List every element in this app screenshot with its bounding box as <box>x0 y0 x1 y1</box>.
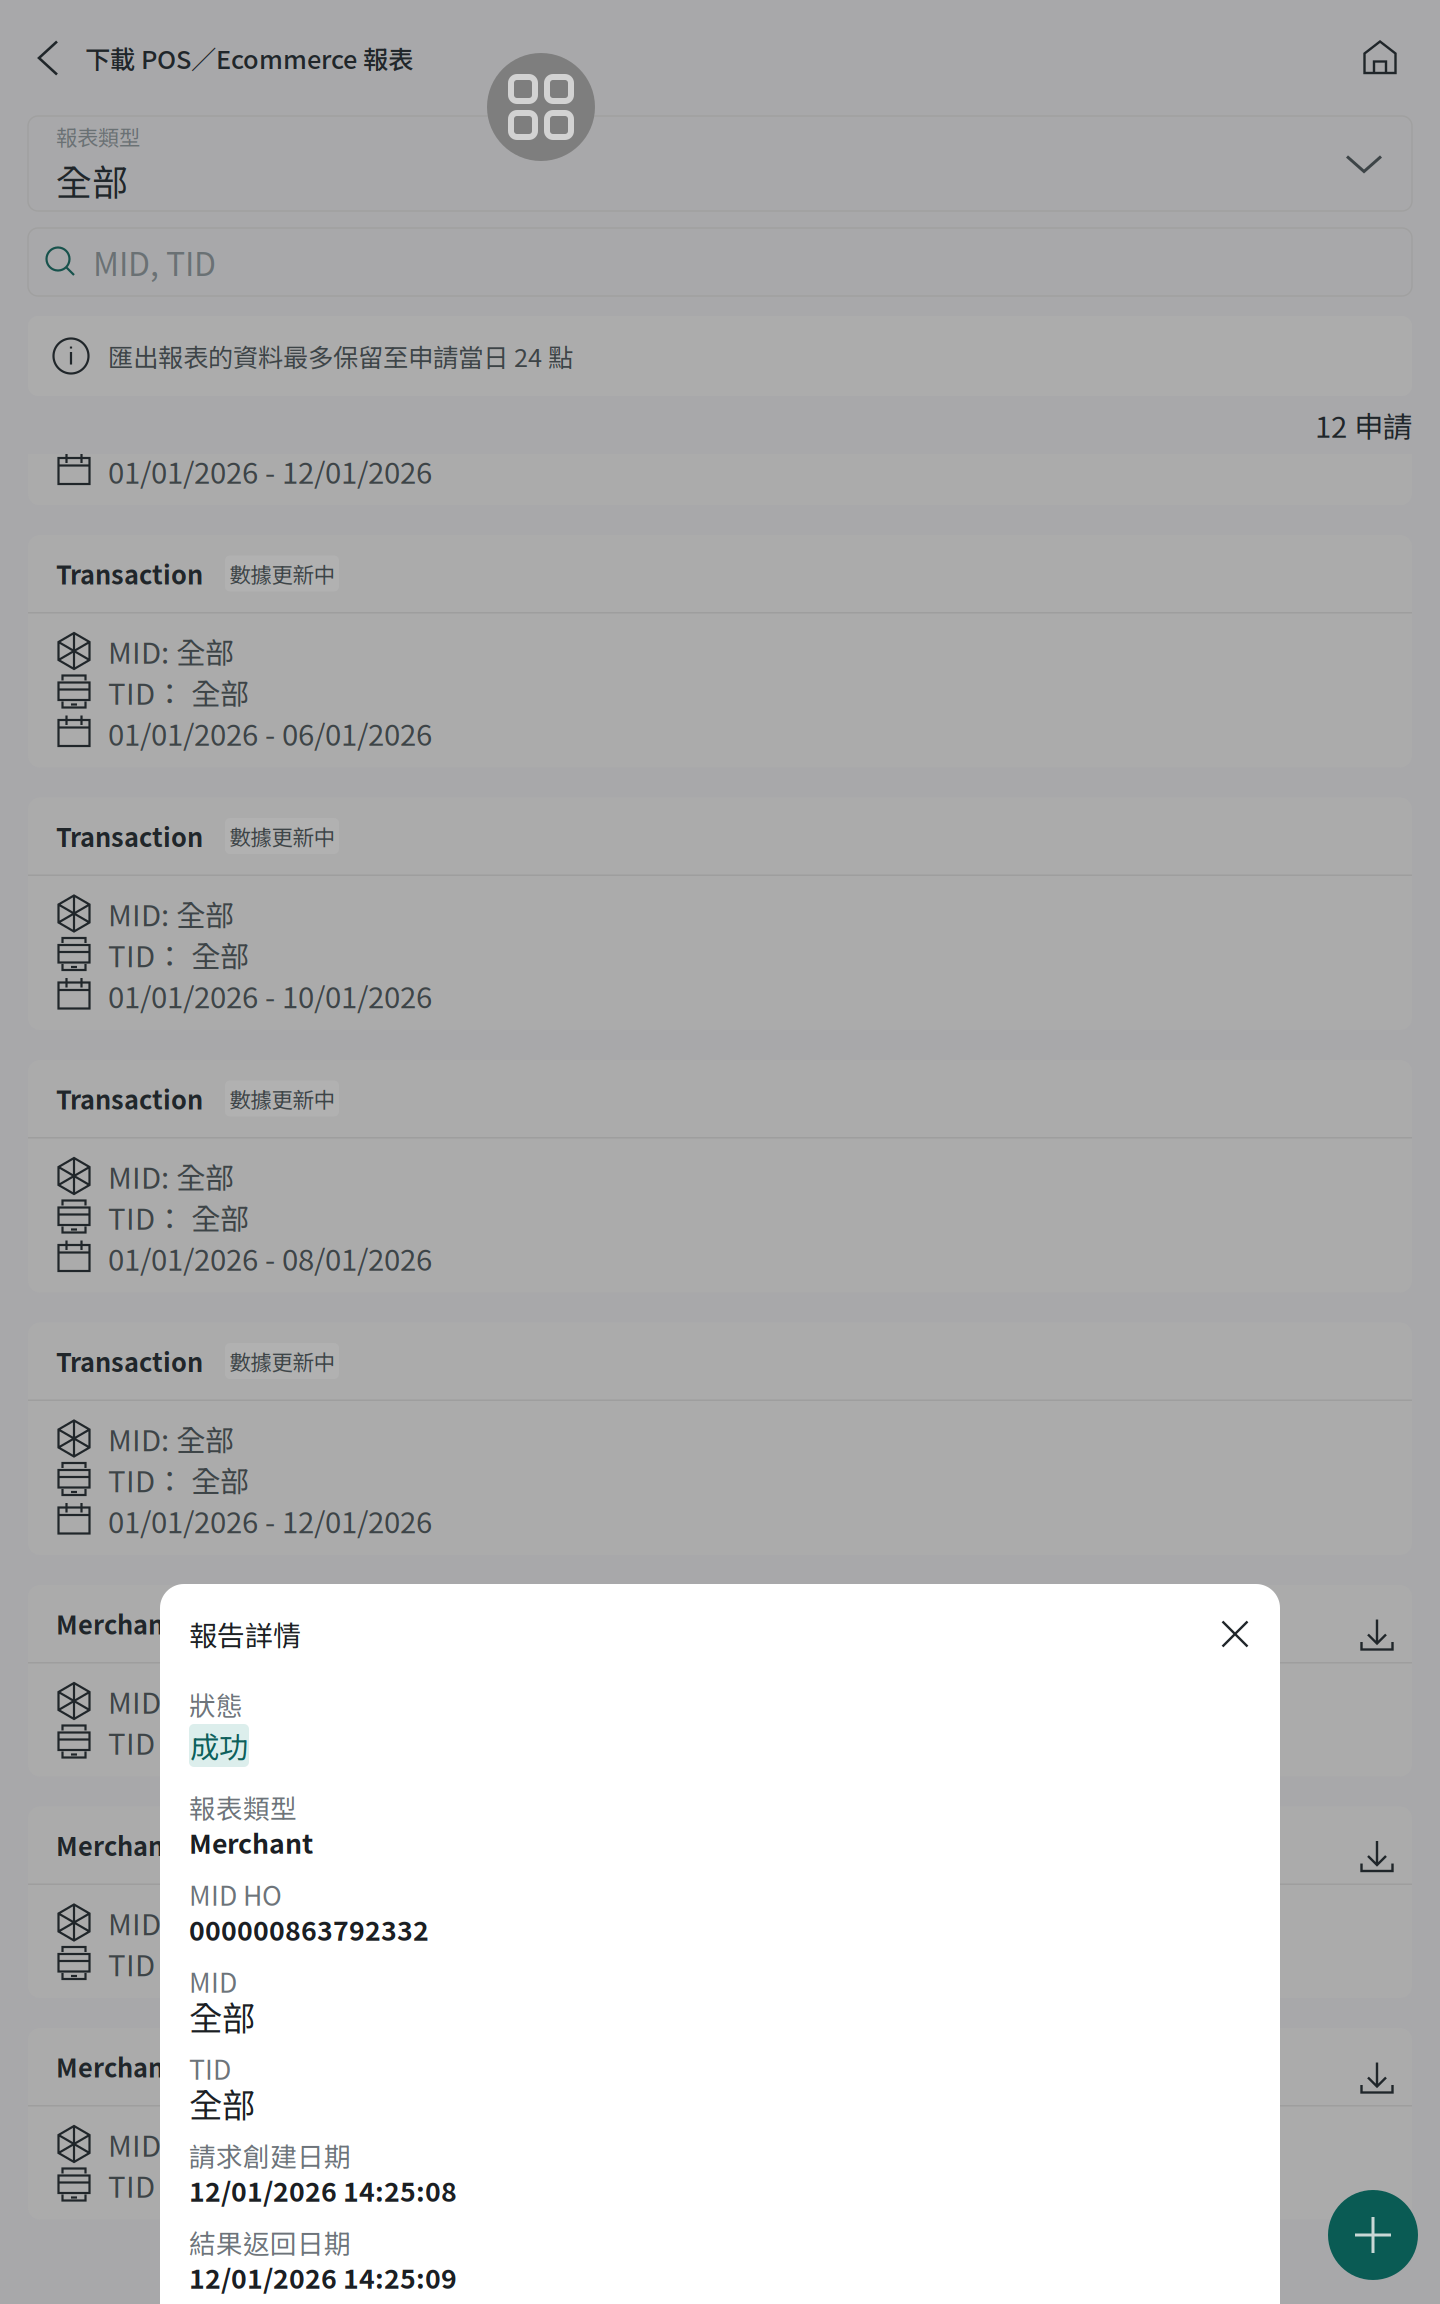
button[interactable]: Home <box>1344 0 1416 116</box>
staticText: 成功 <box>190 1724 248 1767</box>
staticText: 全部 <box>189 2079 255 2127</box>
staticText: TID： 全部 <box>108 1721 249 1763</box>
staticText: 12/01/2026 14:25:09 <box>189 2258 457 2296</box>
staticText: 數據更新中 <box>229 558 334 589</box>
staticText: Transaction <box>56 555 203 592</box>
staticText: Transaction <box>56 818 203 854</box>
staticText: TID： 全部 <box>108 671 249 713</box>
staticText: TID： 全部 <box>108 1942 249 1985</box>
staticText: MID: 全部 <box>108 1680 234 1722</box>
staticText: Transaction <box>56 1080 203 1117</box>
staticText: MID: 全部 <box>108 1417 234 1460</box>
staticText: 全部 <box>189 1992 255 2040</box>
staticText: MID: 全部 <box>108 1155 234 1197</box>
staticText: 報告詳情 <box>189 1614 301 1654</box>
staticText: 狀態 <box>189 1685 243 1723</box>
staticText: Merchant <box>189 1823 313 1861</box>
staticText: TID： 全部 <box>108 2164 249 2206</box>
staticText: MID: 全部 <box>108 1901 234 1944</box>
button[interactable]: Download report <box>1349 1606 1405 1662</box>
button[interactable]: Close <box>1207 1606 1263 1662</box>
staticText: MID: 全部 <box>108 892 234 935</box>
staticText: 000000863792332 <box>189 1910 429 1948</box>
staticText: MID: 全部 <box>108 630 234 672</box>
staticText: 01/01/2026 - 06/01/2026 <box>108 712 432 754</box>
button[interactable]: Download report <box>1349 1828 1405 1884</box>
staticText: MID, TID <box>93 239 216 285</box>
button[interactable]: Download report <box>1349 2049 1405 2105</box>
staticText: MID: 全部 <box>108 2123 234 2165</box>
staticText: Merchant <box>56 2048 175 2085</box>
button[interactable]: Back <box>24 0 74 116</box>
button[interactable]: 報表類型 <box>28 116 1412 211</box>
staticText: 結果返回日期 <box>189 2223 351 2261</box>
staticText: 匯出報表的資料最多保留至申請當日 24 點 <box>108 338 573 374</box>
staticText: 數據更新中 <box>229 1083 334 1114</box>
staticText: 請求創建日期 <box>189 2136 351 2174</box>
staticText: MID <box>189 1962 237 2000</box>
staticText: Merchant <box>56 1827 175 1863</box>
staticText: 下載 POS／Ecommerce 報表 <box>85 40 413 76</box>
staticText: Merchant <box>56 1605 175 1642</box>
button[interactable]: App switcher <box>487 53 595 161</box>
staticText: TID： 全部 <box>108 1196 249 1238</box>
staticText: 報表類型 <box>56 121 140 152</box>
staticText: MID: 全部 <box>108 368 234 410</box>
staticText: TID： 全部 <box>108 933 249 976</box>
staticText: TID： 全部 <box>108 1458 249 1501</box>
staticText: 12/01/2026 14:25:08 <box>189 2171 457 2209</box>
staticText: 全部 <box>56 154 128 206</box>
button[interactable]: New report request <box>1328 2190 1418 2280</box>
staticText: MID HO <box>189 1875 282 1913</box>
staticText: 報表類型 <box>189 1788 297 1826</box>
staticText: 數據更新中 <box>229 1346 334 1376</box>
staticText: Transaction <box>56 1343 203 1379</box>
staticText: 數據更新中 <box>229 821 334 851</box>
staticText: 12 申請 <box>1315 404 1412 446</box>
button[interactable]: MID, TID <box>28 228 1412 296</box>
staticText: 01/01/2026 - 08/01/2026 <box>108 1237 432 1279</box>
staticText: TID <box>189 2049 231 2087</box>
staticText: 01/01/2026 - 12/01/2026 <box>108 450 432 492</box>
staticText: 01/01/2026 - 12/01/2026 <box>108 1499 432 1542</box>
staticText: 01/01/2026 - 10/01/2026 <box>108 974 432 1017</box>
